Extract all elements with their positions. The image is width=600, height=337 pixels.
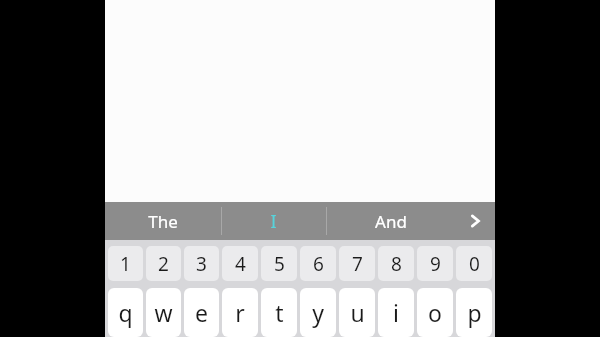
- button[interactable]: e: [184, 288, 219, 337]
- staticText: o: [428, 297, 442, 328]
- staticText: 6: [313, 251, 324, 277]
- button[interactable]: And: [326, 202, 455, 240]
- staticText: 7: [352, 251, 363, 277]
- staticText: 8: [391, 251, 402, 277]
- staticText: 2: [158, 251, 169, 277]
- staticText: 5: [274, 251, 285, 277]
- button[interactable]: 3: [184, 246, 219, 281]
- staticText: 0: [469, 251, 480, 277]
- button[interactable]: The: [105, 202, 221, 240]
- button[interactable]: 5: [261, 246, 297, 281]
- staticText: w: [154, 297, 173, 328]
- staticText: t: [275, 297, 284, 328]
- button[interactable]: p: [456, 288, 492, 337]
- staticText: The: [148, 210, 178, 233]
- staticText: 3: [196, 251, 207, 277]
- button[interactable]: 8: [378, 246, 414, 281]
- staticText: I: [270, 209, 277, 234]
- staticText: r: [235, 297, 245, 328]
- button[interactable]: q: [108, 288, 143, 337]
- button[interactable]: w: [146, 288, 181, 337]
- button[interactable]: t: [261, 288, 297, 337]
- staticText: And: [375, 210, 407, 233]
- button[interactable]: 2: [146, 246, 181, 281]
- button[interactable]: r: [222, 288, 258, 337]
- staticText: u: [350, 297, 365, 328]
- button[interactable]: u: [339, 288, 375, 337]
- staticText: e: [195, 297, 208, 328]
- staticText: p: [467, 297, 482, 328]
- button[interactable]: y: [300, 288, 336, 337]
- button[interactable]: 1: [108, 246, 143, 281]
- button[interactable]: 9: [417, 246, 453, 281]
- button[interactable]: o: [417, 288, 453, 337]
- staticText: y: [312, 297, 324, 328]
- button[interactable]: 6: [300, 246, 336, 281]
- staticText: i: [393, 297, 399, 328]
- staticText: 4: [235, 251, 246, 277]
- button[interactable]: More suggestions: [455, 202, 495, 240]
- button[interactable]: I: [221, 202, 326, 240]
- staticText: 1: [120, 251, 131, 277]
- button[interactable]: 0: [456, 246, 492, 281]
- staticText: 9: [430, 251, 441, 277]
- button[interactable]: 4: [222, 246, 258, 281]
- button[interactable]: i: [378, 288, 414, 337]
- staticText: q: [118, 297, 133, 328]
- button[interactable]: 7: [339, 246, 375, 281]
